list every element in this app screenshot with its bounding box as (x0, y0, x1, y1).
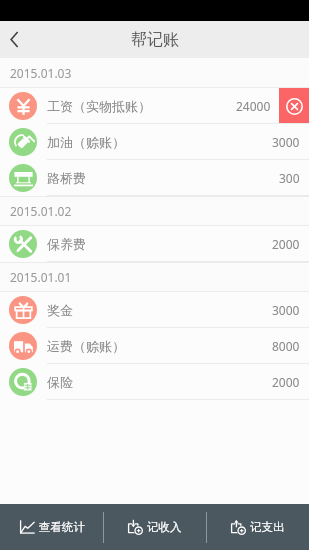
button[interactable]: 保险 (0, 364, 309, 400)
staticText: 8000 (272, 338, 300, 354)
button[interactable]: 查看统计 (0, 504, 103, 550)
staticText: 路桥费 (47, 170, 86, 186)
button[interactable]: 奖金 (0, 292, 309, 328)
staticText: 奖金 (47, 302, 73, 318)
button[interactable]: 保养费 (0, 226, 309, 262)
staticText: 保养费 (47, 236, 86, 252)
staticText: 查看统计 (39, 520, 85, 534)
staticText: 记支出 (250, 520, 285, 534)
staticText: 运费（赊账） (47, 338, 125, 354)
button[interactable]: 工资（实物抵账） (0, 88, 309, 124)
staticText: 帮记账 (131, 30, 179, 50)
staticText: 2000 (272, 374, 300, 390)
staticText: 2000 (272, 236, 300, 252)
staticText: 保险 (47, 374, 73, 390)
button[interactable]: 记支出 (206, 504, 309, 550)
button[interactable]: 路桥费 (0, 160, 309, 196)
staticText: 2015.01.01 (10, 269, 72, 285)
staticText: 3000 (272, 302, 300, 318)
staticText: 2015.01.02 (10, 203, 72, 219)
staticText: 记收入 (147, 520, 182, 534)
staticText: 2015.01.03 (10, 65, 72, 81)
staticText: 300 (279, 170, 300, 186)
button[interactable]: 运费（赊账） (0, 328, 309, 364)
button[interactable]: 加油（赊账） (0, 124, 309, 160)
staticText: 加油（赊账） (47, 134, 125, 150)
staticText: 工资（实物抵账） (47, 98, 151, 114)
button[interactable]: Delete (279, 88, 309, 124)
staticText: 3000 (272, 134, 300, 150)
staticText: 24000 (236, 98, 271, 114)
button[interactable]: 记收入 (103, 504, 206, 550)
button[interactable]: Back (0, 21, 28, 58)
